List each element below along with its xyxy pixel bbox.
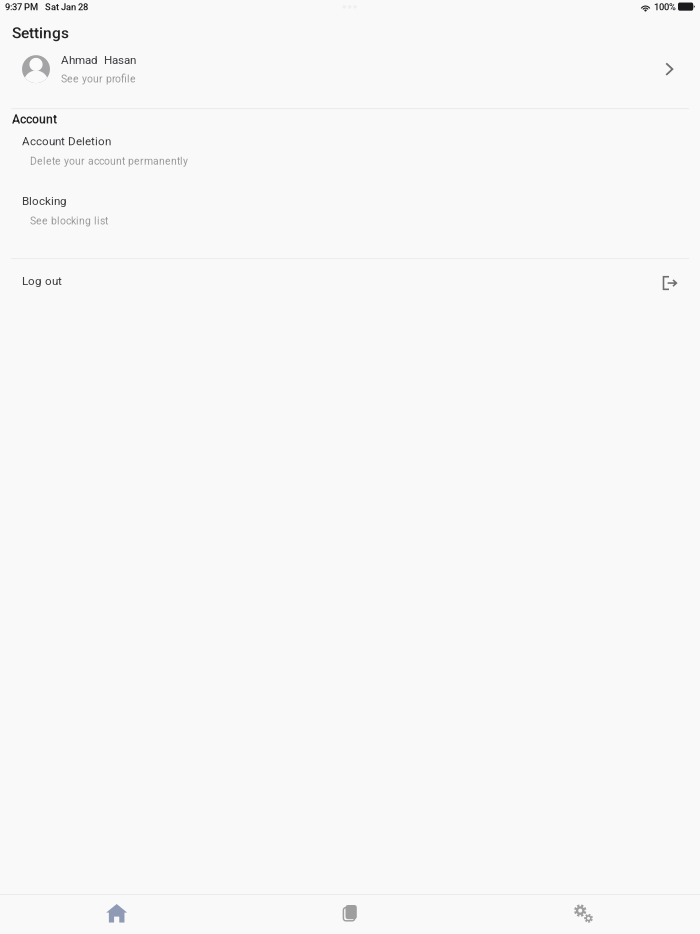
staticText: Settings: [12, 24, 69, 42]
staticText: See your profile: [61, 73, 136, 85]
staticText: Log out: [22, 274, 62, 288]
staticText: Ahmad Hasan: [61, 53, 136, 67]
staticText: Sat Jan 28: [45, 1, 88, 12]
button[interactable]: Home: [0, 895, 233, 934]
staticText: 9:37 PM: [5, 1, 38, 12]
button[interactable]: Account Deletion: [0, 134, 700, 167]
staticText: 100%: [654, 1, 676, 12]
staticText: See blocking list: [30, 215, 108, 227]
staticText: Delete your account permanently: [30, 155, 188, 167]
button[interactable]: Documents: [233, 895, 467, 934]
button[interactable]: Log out: [0, 272, 700, 290]
staticText: Account: [12, 112, 57, 126]
button[interactable]: Blocking: [0, 194, 700, 227]
button[interactable]: Ahmad Hasan: [0, 55, 700, 83]
button[interactable]: Settings: [467, 895, 700, 934]
staticText: Account Deletion: [22, 134, 111, 148]
staticText: Blocking: [22, 194, 67, 208]
